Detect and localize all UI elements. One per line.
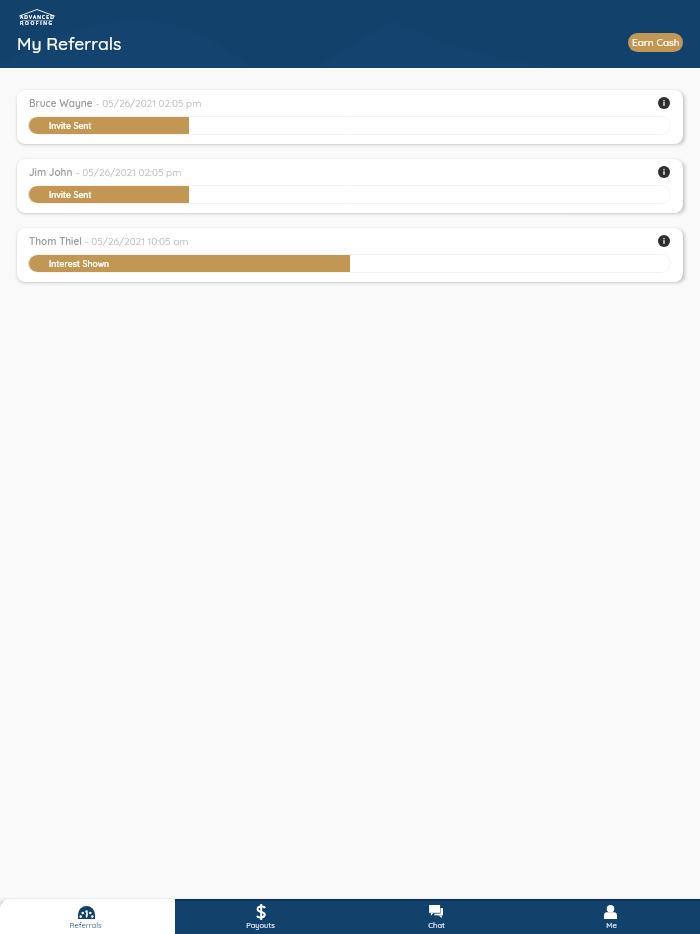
button[interactable]: Info — [658, 235, 670, 247]
button[interactable]: Jim John — [17, 159, 683, 213]
staticText: Invite Sent — [49, 189, 92, 200]
staticText: Payouts — [246, 920, 275, 929]
staticText: Referrals — [69, 920, 102, 929]
staticText: Bruce Wayne — [29, 97, 93, 110]
button[interactable]: Payouts — [175, 899, 350, 934]
staticText: - 05/26/2021 02:05 pm — [73, 166, 182, 179]
staticText: ADVANCED — [20, 14, 55, 20]
staticText: Interest Shown — [49, 258, 110, 269]
button[interactable]: Chat — [350, 899, 525, 934]
button[interactable]: Info — [658, 166, 670, 178]
staticText: Jim John — [29, 166, 73, 179]
staticText: Earn Cash — [632, 36, 680, 49]
button[interactable]: Referrals — [0, 899, 175, 934]
button[interactable]: Bruce Wayne — [17, 90, 683, 144]
button[interactable]: Info — [658, 97, 670, 109]
button[interactable]: Me — [525, 899, 700, 934]
button[interactable]: Thom Thiel — [17, 228, 683, 282]
staticText: Thom Thiel — [29, 235, 82, 248]
staticText: Me — [606, 920, 617, 929]
staticText: - 05/26/2021 02:05 pm — [93, 97, 202, 110]
staticText: - 05/26/2021 10:05 am — [82, 235, 189, 248]
staticText: Invite Sent — [49, 120, 92, 131]
staticText: Chat — [428, 920, 445, 929]
staticText: My Referrals — [17, 32, 122, 54]
button[interactable]: Earn Cash — [628, 33, 683, 52]
staticText: ROOFING — [20, 20, 54, 26]
